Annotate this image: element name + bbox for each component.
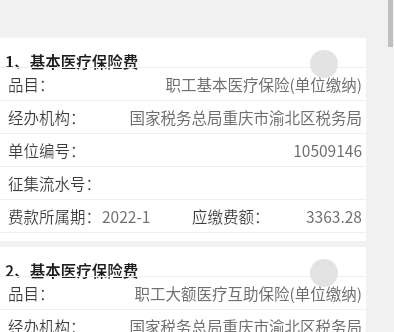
staticText: 费款所属期： bbox=[8, 205, 102, 227]
staticText: 品目： bbox=[8, 282, 55, 304]
staticText: 2、基本医疗保险费 bbox=[5, 259, 139, 281]
staticText: 国家税务总局重庆市渝北区税务局 bbox=[86, 106, 362, 128]
staticText: 国家税务总局重庆市渝北区税务局 bbox=[86, 315, 362, 332]
staticText: 3363.28 bbox=[306, 205, 362, 227]
staticText: 经办机构： bbox=[8, 106, 86, 128]
button[interactable]: Select item bbox=[310, 259, 338, 287]
staticText: 2022-1 bbox=[102, 205, 151, 227]
button[interactable]: Select item bbox=[310, 50, 338, 78]
staticText: 单位编号： bbox=[8, 139, 86, 161]
staticText: 职工大额医疗互助保险(单位缴纳) bbox=[55, 282, 362, 304]
staticText: 10509146 bbox=[86, 139, 362, 161]
staticText: 品目： bbox=[8, 73, 55, 95]
staticText: 征集流水号： bbox=[8, 172, 102, 194]
staticText: 职工基本医疗保险(单位缴纳) bbox=[55, 73, 362, 95]
staticText: 经办机构： bbox=[8, 315, 86, 332]
staticText: 应缴费额： bbox=[192, 205, 270, 227]
staticText: 1、基本医疗保险费 bbox=[5, 50, 139, 72]
